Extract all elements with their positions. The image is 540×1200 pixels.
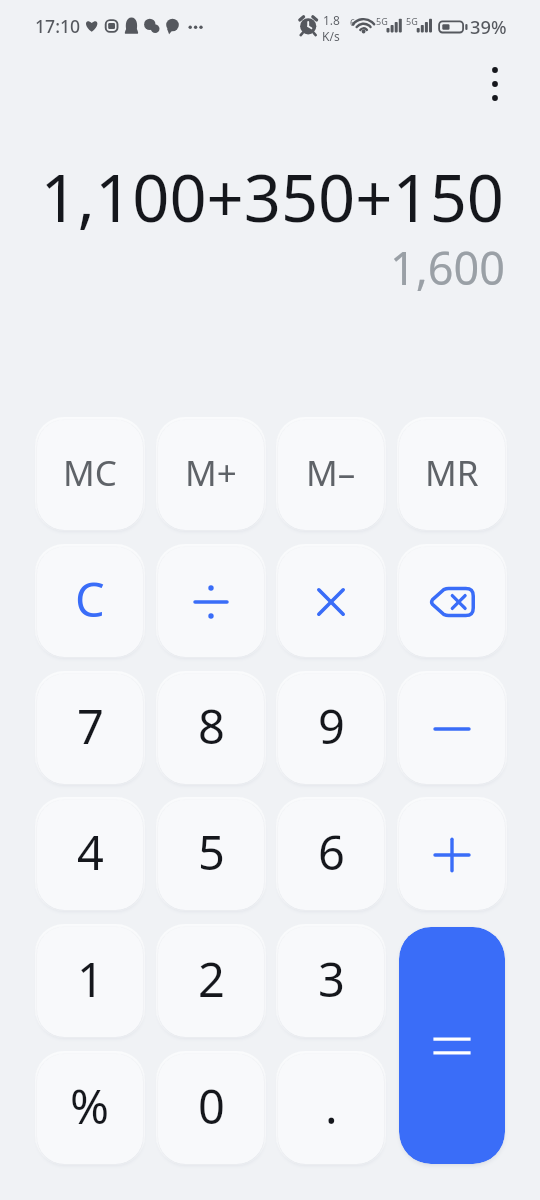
staticText: .	[325, 1074, 338, 1138]
button[interactable]: C	[37, 547, 143, 657]
staticText: 1,600	[389, 237, 505, 298]
button[interactable]: 5	[158, 800, 264, 910]
button[interactable]: 7	[37, 674, 143, 784]
staticText: 5G	[376, 15, 388, 27]
button[interactable]: Equals	[399, 927, 505, 1164]
button[interactable]: Backspace	[399, 547, 505, 657]
staticText: MR	[425, 449, 479, 497]
staticText: 17:10	[35, 14, 81, 38]
staticText: 0	[198, 1074, 225, 1138]
staticText: 6	[318, 820, 345, 884]
button[interactable]: Multiply	[278, 547, 384, 657]
staticText: 5G	[406, 15, 418, 27]
staticText: 4	[77, 820, 104, 884]
button[interactable]: M+	[158, 420, 264, 530]
staticText: MC	[63, 449, 117, 497]
staticText: %	[70, 1074, 110, 1138]
button[interactable]: MR	[399, 420, 505, 530]
staticText: 1,100+350+150	[40, 153, 504, 242]
staticText: K/s	[322, 28, 340, 44]
button[interactable]: Plus	[399, 800, 505, 910]
button[interactable]: 8	[158, 674, 264, 784]
button[interactable]: %	[37, 1054, 143, 1164]
staticText: 7	[77, 694, 104, 758]
staticText: 1.8	[323, 12, 340, 28]
button[interactable]: 9	[278, 674, 384, 784]
staticText: 8	[198, 694, 225, 758]
button[interactable]: M–	[278, 420, 384, 530]
button[interactable]: 0	[158, 1054, 264, 1164]
button[interactable]: 1	[37, 927, 143, 1037]
staticText: M+	[185, 449, 237, 497]
button[interactable]: Divide	[158, 547, 264, 657]
staticText: 9	[318, 694, 345, 758]
staticText: 6	[350, 16, 356, 28]
button[interactable]: 4	[37, 800, 143, 910]
staticText: 1	[77, 947, 104, 1011]
button[interactable]: More options	[471, 60, 519, 108]
staticText: 39%	[470, 14, 507, 39]
staticText: C	[75, 567, 105, 631]
button[interactable]: Minus	[399, 674, 505, 784]
staticText: 3	[318, 947, 345, 1011]
button[interactable]: MC	[37, 420, 143, 530]
staticText: M–	[306, 449, 356, 497]
staticText: 2	[198, 947, 225, 1011]
button[interactable]: 3	[278, 927, 384, 1037]
button[interactable]: 2	[158, 927, 264, 1037]
button[interactable]: 6	[278, 800, 384, 910]
button[interactable]: .	[278, 1054, 384, 1164]
staticText: 5	[198, 820, 225, 884]
